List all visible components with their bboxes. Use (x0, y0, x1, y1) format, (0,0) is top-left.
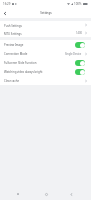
button[interactable]: Push Settings (0, 21, 91, 29)
staticText: 100% (74, 2, 82, 6)
button[interactable]: Watching video always bright (0, 67, 91, 76)
staticText: Fullscreen Slide Function (4, 61, 37, 65)
button[interactable]: Preview Image (0, 40, 91, 49)
staticText: Connection Mode (4, 52, 28, 56)
staticText: Single Device (65, 52, 82, 56)
button[interactable]: Clear cache (0, 76, 91, 85)
staticText: 1400 (76, 31, 82, 35)
staticText: 16:29 (3, 2, 11, 6)
staticText: Push Settings (4, 24, 22, 28)
button[interactable]: Recents (12, 188, 24, 200)
button[interactable]: Back (65, 188, 77, 200)
button[interactable]: Fullscreen Slide Function (0, 58, 91, 67)
staticText: Clear cache (4, 79, 20, 83)
staticText: Watching video always bright (4, 70, 43, 74)
staticText: Settings (40, 11, 52, 15)
staticText: Preview Image (4, 43, 24, 47)
button[interactable]: Back (1, 9, 9, 17)
button[interactable]: Connection Mode (0, 49, 91, 58)
staticText: MTU Settings (4, 32, 22, 36)
button[interactable]: Home (40, 188, 52, 200)
button[interactable]: MTU Settings (0, 29, 91, 37)
